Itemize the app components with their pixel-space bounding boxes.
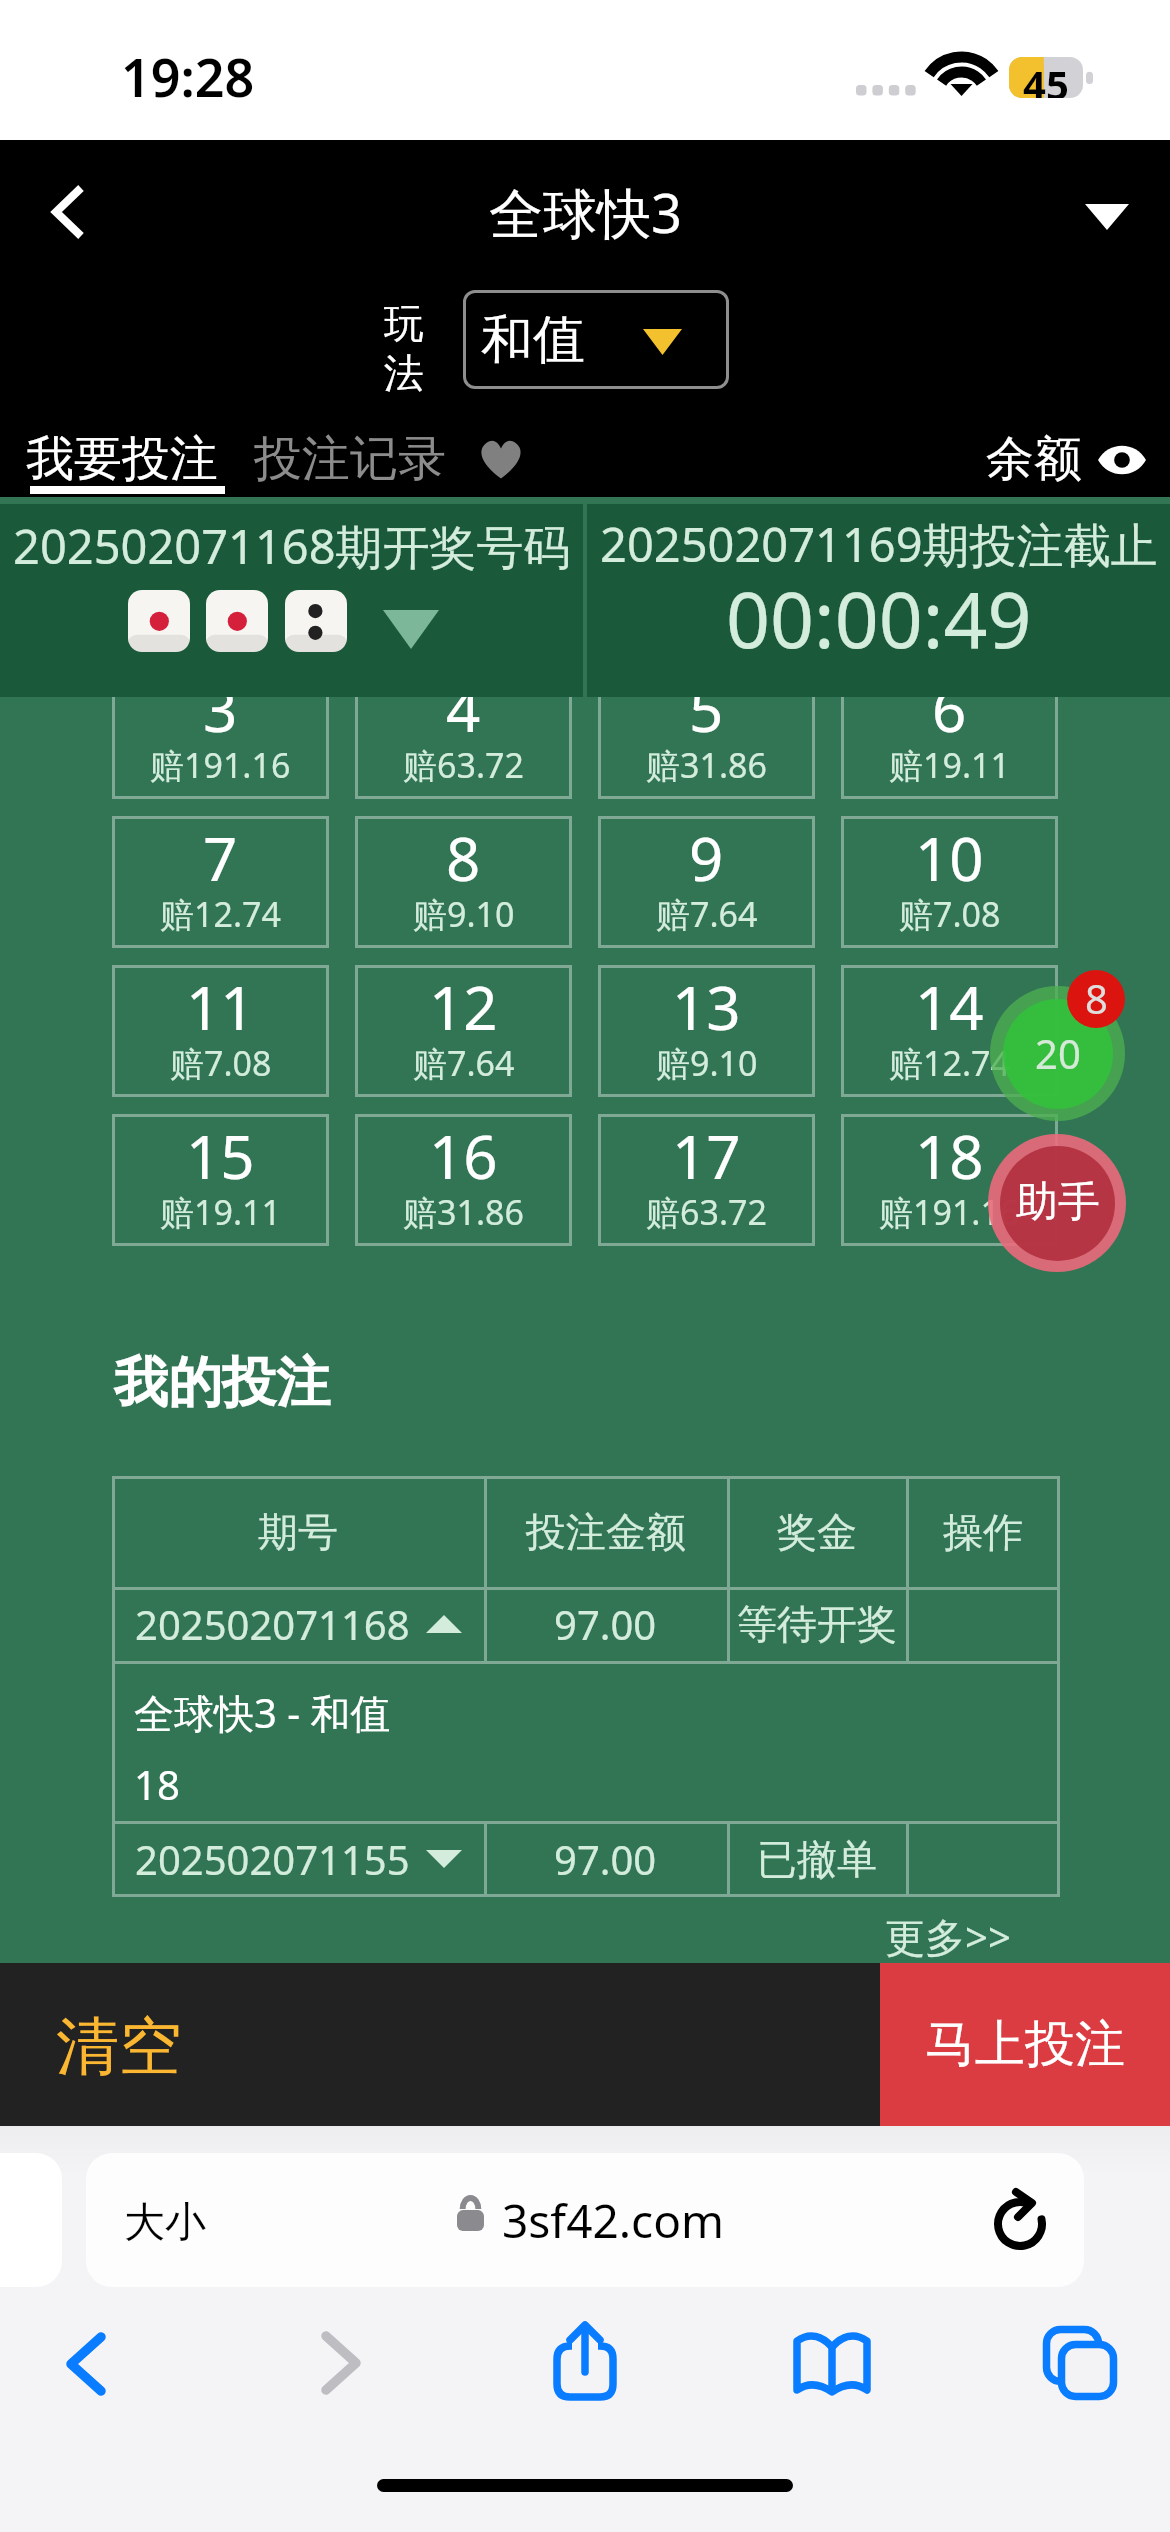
staticText: 14	[915, 966, 984, 1048]
staticText: 全球快3 - 和值	[134, 1685, 391, 1740]
button[interactable]: 11	[112, 965, 329, 1097]
staticText: 更多>>	[885, 1909, 1011, 1964]
button[interactable]: 清空	[0, 1963, 880, 2126]
staticText: 15	[186, 1115, 255, 1197]
staticText: 马上投注	[925, 2013, 1125, 2076]
button[interactable]: 202502071168	[112, 1587, 484, 1661]
button[interactable]: Reload	[988, 2192, 1052, 2256]
button[interactable]: 我要投注	[23, 423, 223, 495]
staticText: 赔63.72	[646, 1189, 767, 1235]
button[interactable]: 4	[355, 667, 572, 799]
staticText: 赔63.72	[403, 742, 524, 788]
staticText: 大小	[124, 2197, 206, 2249]
staticText: 4	[446, 668, 481, 750]
staticText: 玩	[384, 298, 424, 348]
staticText: 我的投注	[114, 1349, 330, 1417]
staticText: 202502071155	[135, 1832, 410, 1886]
button[interactable]: 大小	[86, 2153, 1084, 2287]
staticText: 操作	[943, 1507, 1023, 1557]
staticText: 19:28	[121, 41, 255, 112]
button[interactable]: Bookmarks	[784, 2315, 880, 2411]
button[interactable]: Share	[537, 2313, 633, 2409]
staticText: 5	[689, 668, 724, 750]
button[interactable]: 15	[112, 1114, 329, 1246]
staticText: 45	[1023, 57, 1069, 98]
button[interactable]: Forward	[293, 2315, 389, 2411]
staticText: 清空	[56, 2007, 182, 2086]
staticText: 7	[203, 817, 238, 899]
staticText: 97.00	[554, 1832, 657, 1886]
staticText: 赔191.16	[879, 1189, 1020, 1235]
staticText: 余额	[986, 429, 1082, 489]
staticText: 我要投注	[26, 429, 218, 489]
button[interactable]: 和值	[463, 290, 729, 389]
staticText: 赔7.08	[899, 891, 1001, 937]
staticText: 8	[1085, 971, 1108, 1025]
button[interactable]: 余额	[986, 429, 1146, 489]
button[interactable]: 10	[841, 816, 1058, 948]
staticText: 赔12.74	[160, 891, 281, 937]
button[interactable]: Back	[22, 168, 108, 254]
staticText: 投注金额	[526, 1507, 686, 1557]
staticText: 助手	[1016, 1176, 1100, 1229]
staticText: 12	[429, 966, 498, 1048]
button[interactable]: 202502071155	[112, 1821, 484, 1897]
staticText: 赔19.11	[889, 742, 1010, 788]
staticText: 00:00:49	[726, 566, 1032, 671]
staticText: 赔31.86	[646, 742, 767, 788]
button[interactable]: 17	[598, 1114, 815, 1246]
button[interactable]: 7	[112, 816, 329, 948]
button[interactable]: Back	[38, 2316, 134, 2412]
staticText: 3	[203, 668, 238, 750]
staticText: 全球快3	[489, 175, 682, 249]
button[interactable]: 马上投注	[880, 1963, 1170, 2126]
staticText: 赔191.16	[150, 742, 291, 788]
button[interactable]: 18	[841, 1114, 1058, 1246]
staticText: 奖金	[777, 1507, 857, 1557]
staticText: 13	[672, 966, 741, 1048]
button[interactable]: 5	[598, 667, 815, 799]
button[interactable]: 13	[598, 965, 815, 1097]
button[interactable]: 12	[355, 965, 572, 1097]
staticText: 10	[915, 817, 984, 899]
staticText: 赔9.10	[413, 891, 515, 937]
button[interactable]: 14	[841, 965, 1058, 1097]
staticText: 11	[186, 966, 255, 1048]
staticText: 等待开奖	[737, 1599, 897, 1649]
staticText: 赔7.64	[656, 891, 758, 937]
button[interactable]: Tabs	[1032, 2315, 1128, 2411]
button[interactable]: 投注记录	[254, 429, 446, 489]
staticText: 赔12.74	[889, 1040, 1010, 1086]
staticText: 9	[689, 817, 724, 899]
staticText: 赔31.86	[403, 1189, 524, 1235]
button[interactable]: Choose game	[1064, 172, 1150, 258]
staticText: 6	[932, 668, 967, 750]
staticText: 和值	[481, 307, 585, 373]
staticText: 赔7.08	[170, 1040, 272, 1086]
staticText: 法	[384, 348, 424, 398]
staticText: 8	[446, 817, 481, 899]
button[interactable]: 9	[598, 816, 815, 948]
staticText: 赔19.11	[160, 1189, 281, 1235]
button[interactable]: Selected bets 20	[990, 986, 1125, 1121]
staticText: 97.00	[554, 1597, 657, 1651]
staticText: 期号	[258, 1507, 338, 1557]
staticText: 已撤单	[757, 1834, 877, 1884]
button[interactable]: 更多>>	[881, 1905, 1015, 1968]
staticText: 赔9.10	[656, 1040, 758, 1086]
staticText: 18	[915, 1115, 984, 1197]
staticText: 16	[429, 1115, 498, 1197]
staticText: 投注记录	[254, 429, 446, 489]
staticText: 17	[672, 1115, 741, 1197]
button[interactable]: Favourite	[470, 428, 534, 492]
staticText: 202502071168期开奖号码	[13, 514, 571, 578]
button[interactable]: 8	[355, 816, 572, 948]
staticText: 202502071169期投注截止	[600, 512, 1158, 576]
button[interactable]: 6	[841, 667, 1058, 799]
staticText: 18	[134, 1757, 180, 1811]
button[interactable]: 3	[112, 667, 329, 799]
staticText: 202502071168	[135, 1597, 410, 1651]
button[interactable]: Assistant	[988, 1134, 1126, 1272]
button[interactable]: 16	[355, 1114, 572, 1246]
staticText: 20	[1035, 1026, 1081, 1080]
